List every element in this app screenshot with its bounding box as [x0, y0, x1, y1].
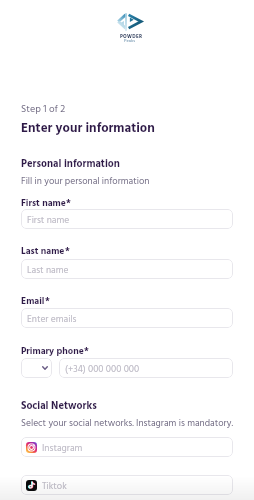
button[interactable]: Instagram	[21, 437, 233, 457]
staticText: Select your social networks. Instagram i…	[21, 416, 233, 431]
staticText: (+34) 000 000 000	[65, 362, 140, 377]
staticText: Instagram	[42, 441, 83, 456]
staticText: Enter emails	[27, 312, 77, 327]
button[interactable]: (+34) 000 000 000	[59, 358, 233, 378]
staticText: *	[65, 244, 70, 259]
button[interactable]: Enter emails	[21, 308, 233, 328]
button[interactable]: First name	[21, 209, 233, 229]
staticText: Enter your information	[21, 118, 155, 139]
staticText: Fill in your personal information	[21, 174, 150, 189]
staticText: Step 1 of 2	[21, 101, 66, 117]
staticText: *	[66, 196, 71, 211]
staticText: Email	[21, 294, 45, 309]
staticText: First name	[21, 196, 66, 211]
staticText: Last name	[27, 263, 69, 278]
staticText: Tiktok	[42, 479, 67, 494]
staticText: Personal information	[21, 156, 120, 173]
staticText: *	[84, 344, 89, 359]
button[interactable]: Tiktok	[21, 475, 233, 495]
staticText: POWDER	[120, 33, 143, 41]
staticText: Social Networks	[21, 398, 97, 415]
staticText: Primary phone	[21, 344, 84, 359]
staticText: Peaks	[124, 37, 136, 44]
staticText: *	[45, 294, 50, 309]
staticText: Last name	[21, 244, 65, 259]
staticText: First name	[27, 213, 70, 228]
button[interactable]: Select country code	[21, 358, 52, 378]
button[interactable]: Last name	[21, 259, 233, 279]
